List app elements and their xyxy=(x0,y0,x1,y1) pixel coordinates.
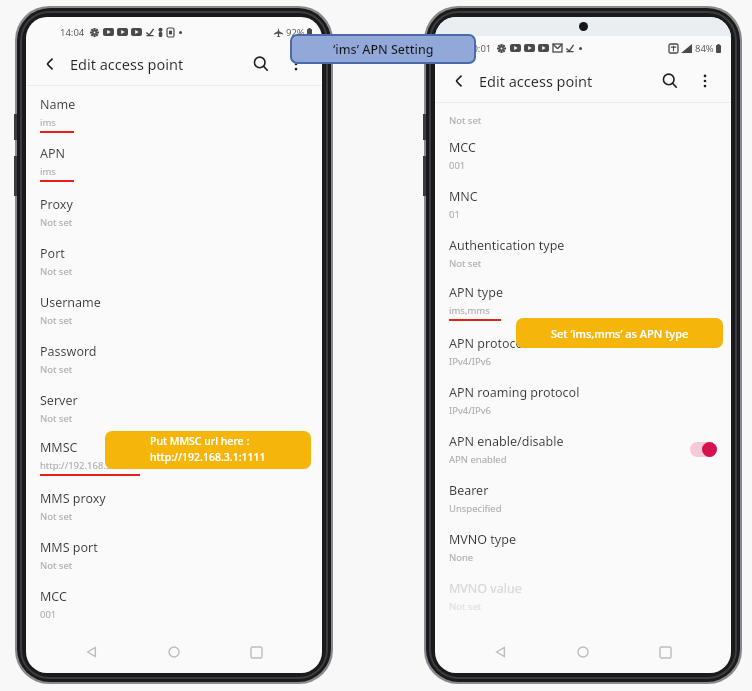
staticText: MMS proxy xyxy=(40,490,106,507)
staticText: IPv4/IPv6 xyxy=(449,404,491,417)
button[interactable]: Search xyxy=(657,68,683,94)
button[interactable]: Search xyxy=(248,51,274,77)
button[interactable]: Bearer xyxy=(435,474,731,523)
button[interactable]: APN roaming protocol xyxy=(435,376,731,425)
button[interactable]: MMSC xyxy=(26,433,322,482)
staticText: Set ‘ims,mms’ as APN type xyxy=(551,326,689,341)
button[interactable]: APN protocol xyxy=(435,327,731,376)
staticText: APN type xyxy=(449,284,503,301)
staticText: http://192.168.3.1:1111 xyxy=(40,459,144,472)
staticText: Not set xyxy=(40,216,73,229)
staticText: Server xyxy=(40,392,78,409)
staticText: Not set xyxy=(449,114,482,127)
button[interactable]: Recent apps xyxy=(649,636,681,668)
staticText: Edit access point xyxy=(479,71,593,91)
button[interactable]: ‘ims’ APN Setting xyxy=(290,34,476,64)
button[interactable]: MVNO value xyxy=(435,572,731,621)
staticText: IPv4/IPv6 xyxy=(449,355,491,368)
button[interactable]: Proxy xyxy=(26,188,322,237)
staticText: APN xyxy=(40,145,66,162)
staticText: MMSC xyxy=(40,439,78,456)
staticText: Not set xyxy=(449,600,482,613)
button[interactable]: MNC xyxy=(435,180,731,229)
staticText: None xyxy=(449,551,474,564)
staticText: Not set xyxy=(40,363,73,376)
button[interactable]: MVNO type xyxy=(435,523,731,572)
button[interactable]: MMS proxy xyxy=(26,482,322,531)
button[interactable]: Back xyxy=(38,52,62,76)
button[interactable]: Recent apps xyxy=(240,636,272,668)
staticText: 84% xyxy=(695,42,714,55)
button[interactable]: Name xyxy=(26,90,322,139)
staticText: Not set xyxy=(40,510,73,523)
button[interactable]: Username xyxy=(26,286,322,335)
staticText: Put MMSC url here : xyxy=(150,434,250,448)
staticText: 001 xyxy=(449,159,466,172)
staticText: Bearer xyxy=(449,482,489,499)
button[interactable]: APN enable/disable xyxy=(435,425,731,474)
button[interactable]: Set ‘ims,mms’ as APN type xyxy=(516,318,723,348)
staticText: Not set xyxy=(40,412,73,425)
button[interactable]: Put MMSC url here : xyxy=(105,431,311,469)
staticText: MVNO type xyxy=(449,531,516,548)
staticText: Not set xyxy=(40,265,73,278)
button[interactable]: MCC xyxy=(435,131,731,180)
button[interactable]: Port xyxy=(26,237,322,286)
staticText: APN enable/disable xyxy=(449,433,564,450)
staticText: Edit access point xyxy=(70,54,184,74)
button[interactable]: More options xyxy=(693,69,717,93)
staticText: APN enabled xyxy=(449,453,507,466)
staticText: ‘ims’ APN Setting xyxy=(333,41,434,58)
staticText: 92% xyxy=(286,26,305,39)
staticText: http://192.168.3.1:1111 xyxy=(150,450,266,464)
staticText: MCC xyxy=(449,139,476,156)
staticText: Not set xyxy=(449,257,482,270)
staticText: 001 xyxy=(40,608,57,621)
staticText: MVNO value xyxy=(449,580,522,597)
staticText: MCC xyxy=(40,588,67,605)
staticText: Authentication type xyxy=(449,237,565,254)
staticText: ims xyxy=(40,165,56,178)
staticText: 14:04 xyxy=(60,26,85,39)
button[interactable]: Back xyxy=(485,636,517,668)
button[interactable]: Server xyxy=(26,384,322,433)
button[interactable]: Home xyxy=(567,636,599,668)
button[interactable]: APN enable/disable toggle xyxy=(690,442,717,457)
button[interactable]: More options xyxy=(284,52,308,76)
button[interactable]: Back xyxy=(76,636,108,668)
staticText: MMS port xyxy=(40,539,98,556)
staticText: MNC xyxy=(449,188,478,205)
staticText: Not set xyxy=(40,314,73,327)
staticText: 20:01 xyxy=(467,42,492,55)
staticText: 01 xyxy=(449,208,460,221)
staticText: Username xyxy=(40,294,101,311)
button[interactable]: Password xyxy=(26,335,322,384)
button[interactable]: Home xyxy=(158,636,190,668)
staticText: APN protocol xyxy=(449,335,527,352)
button[interactable]: Back xyxy=(447,69,471,93)
button[interactable]: MMS port xyxy=(26,531,322,580)
staticText: Password xyxy=(40,343,97,360)
staticText: Unspecified xyxy=(449,502,502,515)
button[interactable]: MCC xyxy=(26,580,322,629)
staticText: Port xyxy=(40,245,65,262)
button[interactable]: Authentication type xyxy=(435,229,731,278)
staticText: APN roaming protocol xyxy=(449,384,580,401)
staticText: ims,mms xyxy=(449,304,490,317)
staticText: ims xyxy=(40,116,56,129)
button[interactable]: APN xyxy=(26,139,322,188)
staticText: Proxy xyxy=(40,196,73,213)
button[interactable]: APN type xyxy=(435,278,731,327)
staticText: Not set xyxy=(40,559,73,572)
staticText: Name xyxy=(40,96,76,113)
